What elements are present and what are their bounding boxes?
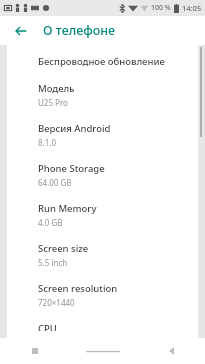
button[interactable]: Screen size	[7, 235, 198, 275]
staticText: Run Memory	[38, 202, 97, 215]
staticText: 8.1.0	[38, 137, 57, 148]
staticText: Screen resolution	[38, 282, 118, 295]
staticText: 5.5 inch	[38, 257, 68, 268]
staticText: Phone Storage	[38, 162, 105, 175]
staticText: Версия Android	[38, 122, 111, 135]
button[interactable]: Phone Storage	[7, 155, 198, 195]
staticText: О телефоне	[43, 22, 116, 39]
button[interactable]: Run Memory	[7, 195, 198, 235]
staticText: CPU	[38, 322, 57, 331]
staticText: 14:05	[182, 3, 202, 13]
button[interactable]: Беспроводное обновление	[7, 48, 198, 75]
staticText: Screen size	[38, 242, 89, 255]
button[interactable]: Recent apps	[0, 338, 69, 364]
staticText: Модель	[38, 82, 75, 95]
button[interactable]: Back	[137, 338, 205, 364]
staticText: 720×1440	[38, 297, 75, 308]
staticText: 4.0 GB	[38, 217, 63, 228]
button[interactable]: CPU	[7, 315, 198, 338]
button[interactable]: Версия Android	[7, 115, 198, 155]
button[interactable]: Back	[11, 21, 31, 41]
button[interactable]: Модель	[7, 75, 198, 115]
staticText: U25 Pro	[38, 97, 68, 108]
staticText: Беспроводное обновление	[38, 55, 165, 68]
staticText: 64.00 GB	[38, 177, 72, 188]
staticText: 100 %	[151, 3, 171, 13]
button[interactable]: Screen resolution	[7, 275, 198, 315]
button[interactable]: Home	[69, 338, 137, 364]
